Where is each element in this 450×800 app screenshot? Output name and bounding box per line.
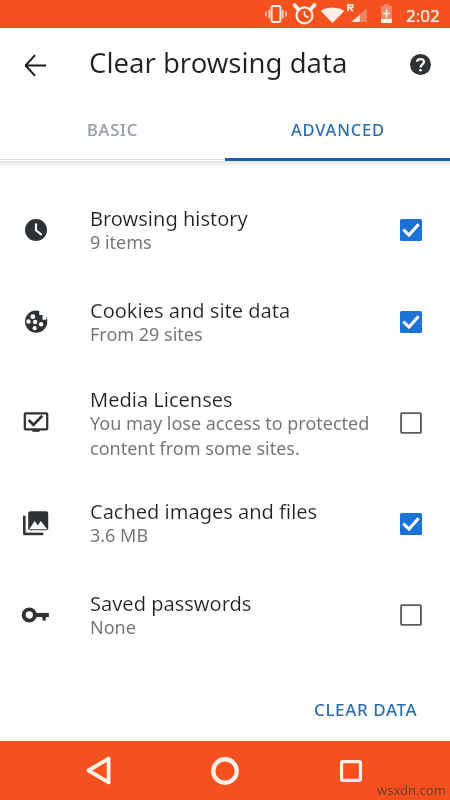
button[interactable]: CLEAR DATA bbox=[304, 690, 428, 729]
staticText: BASIC bbox=[87, 118, 138, 140]
staticText: content from some sites. bbox=[90, 436, 300, 461]
button[interactable] bbox=[0, 276, 450, 366]
staticText: Saved passwords bbox=[90, 590, 252, 617]
staticText: 2:02 bbox=[406, 4, 440, 27]
staticText: ADVANCED bbox=[291, 118, 385, 140]
button[interactable]: Back bbox=[15, 45, 55, 85]
staticText: 3.6 MB bbox=[90, 523, 149, 548]
staticText: Cached images and files bbox=[90, 498, 318, 525]
button[interactable]: ADVANCED bbox=[225, 97, 450, 161]
staticText: 9 items bbox=[90, 230, 152, 255]
staticText: From 29 sites bbox=[90, 322, 203, 347]
staticText: None bbox=[90, 615, 136, 640]
staticText: You may lose access to protected bbox=[90, 411, 370, 436]
button[interactable] bbox=[0, 185, 450, 275]
button[interactable]: BASIC bbox=[0, 97, 225, 161]
staticText: CLEAR DATA bbox=[314, 698, 418, 721]
button[interactable] bbox=[0, 570, 450, 660]
button[interactable]: Home bbox=[195, 741, 255, 800]
button[interactable]: Help bbox=[402, 46, 438, 82]
staticText: Clear browsing data bbox=[89, 44, 348, 81]
staticText: Cookies and site data bbox=[90, 297, 291, 324]
button[interactable] bbox=[0, 478, 450, 568]
button[interactable] bbox=[0, 377, 450, 467]
staticText: Browsing history bbox=[90, 205, 248, 232]
staticText: Media Licenses bbox=[90, 386, 233, 413]
button[interactable]: Back bbox=[69, 741, 129, 800]
button[interactable]: Recents bbox=[321, 741, 381, 800]
staticText: wsxdn.com bbox=[377, 781, 446, 799]
